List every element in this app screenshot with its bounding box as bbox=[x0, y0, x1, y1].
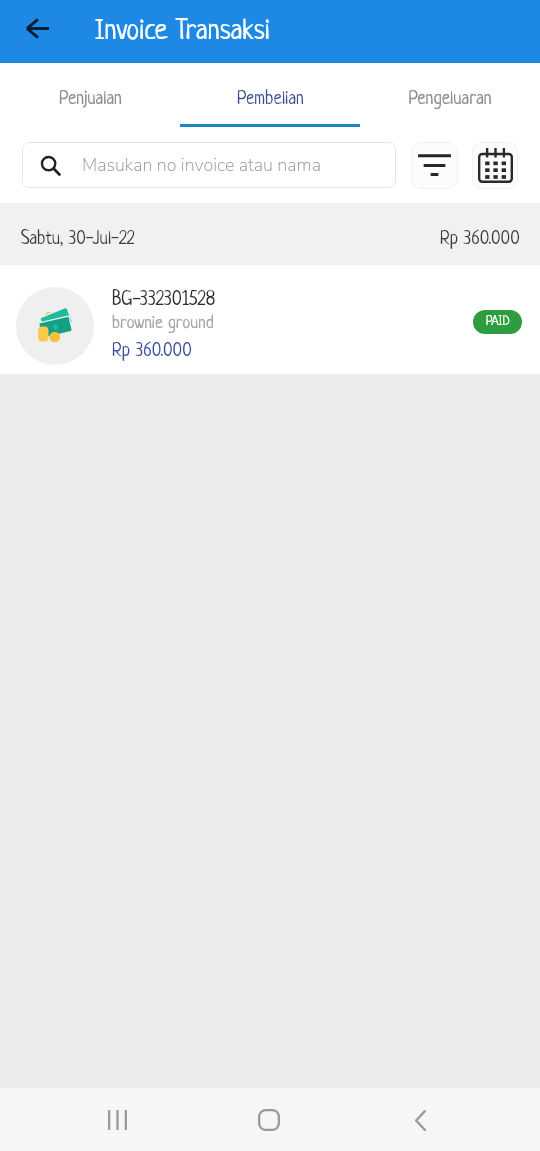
button[interactable]: Recent apps bbox=[89, 1092, 145, 1148]
staticText: Pengeluaran bbox=[408, 89, 492, 109]
button[interactable]: Masukan no invoice atau nama bbox=[22, 142, 396, 188]
staticText: Masukan no invoice atau nama bbox=[82, 153, 321, 178]
button[interactable]: Back bbox=[392, 1092, 448, 1148]
button[interactable]: Pengeluaran bbox=[360, 63, 540, 127]
button[interactable]: Home bbox=[241, 1092, 297, 1148]
button[interactable]: Back bbox=[12, 8, 60, 56]
staticText: PAID bbox=[486, 315, 510, 329]
button[interactable]: PAID bbox=[473, 310, 522, 334]
staticText: Sabtu, 30-Jul-22 bbox=[21, 229, 135, 249]
staticText: Penjualan bbox=[59, 89, 122, 109]
staticText: Rp 360.000 bbox=[112, 341, 192, 361]
button[interactable]: Filter bbox=[411, 142, 458, 189]
staticText: Rp 360.000 bbox=[440, 229, 520, 249]
button[interactable]: BG-332301528 bbox=[0, 265, 540, 374]
button[interactable]: Penjualan bbox=[0, 63, 180, 127]
button[interactable]: Pick date bbox=[472, 142, 518, 189]
staticText: Invoice Transaksi bbox=[95, 17, 270, 48]
staticText: BG-332301528 bbox=[112, 290, 216, 311]
staticText: Pembelian bbox=[237, 89, 304, 109]
button[interactable]: Pembelian bbox=[180, 63, 360, 127]
staticText: brownie ground bbox=[112, 314, 214, 333]
